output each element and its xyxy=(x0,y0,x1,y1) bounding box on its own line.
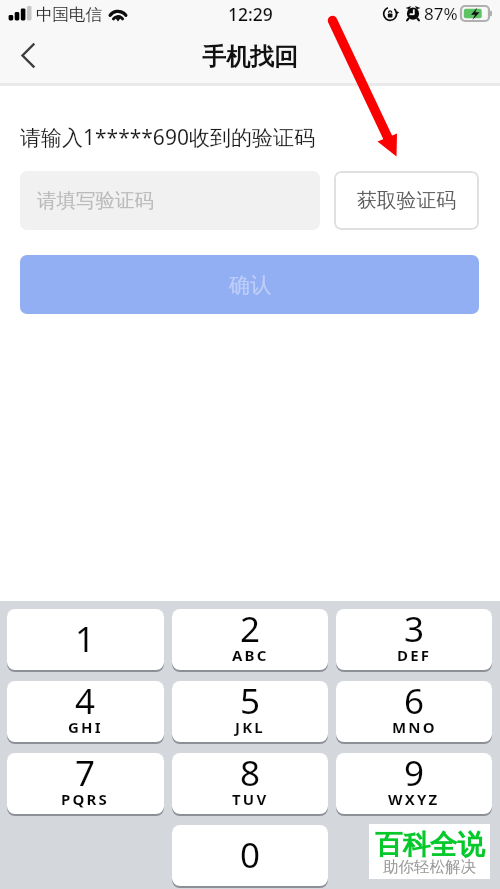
staticText: 确认 xyxy=(229,272,271,298)
staticText: 3 xyxy=(404,609,425,653)
staticText: DEF xyxy=(397,645,432,665)
button[interactable]: 9 xyxy=(336,753,492,814)
staticText: ABC xyxy=(232,645,269,665)
staticText: 请填写验证码 xyxy=(37,188,154,213)
staticText: WXYZ xyxy=(388,789,440,809)
staticText: MNO xyxy=(392,717,437,737)
button[interactable]: 请填写验证码 xyxy=(20,171,320,230)
staticText: 1 xyxy=(75,615,96,663)
button[interactable]: 4 xyxy=(7,681,164,742)
staticText: 手机找回 xyxy=(202,42,298,72)
button[interactable]: 0 xyxy=(172,825,328,886)
button[interactable]: 3 xyxy=(336,609,492,670)
staticText: 4 xyxy=(75,681,96,725)
button[interactable]: 7 xyxy=(7,753,164,814)
staticText: 百科全说 xyxy=(375,828,485,863)
staticText: 6 xyxy=(404,681,425,725)
staticText: GHI xyxy=(68,717,103,737)
button[interactable]: 1 xyxy=(7,609,164,670)
staticText: 请输入1*****690收到的验证码 xyxy=(20,123,315,152)
staticText: 87% xyxy=(424,2,458,25)
staticText: 8 xyxy=(240,753,261,797)
staticText: TUV xyxy=(232,789,269,809)
staticText: 7 xyxy=(75,753,96,797)
staticText: 0 xyxy=(240,831,261,879)
button[interactable]: Back xyxy=(0,31,56,82)
staticText: 12:29 xyxy=(228,2,273,26)
staticText: 中国电信 xyxy=(36,4,102,25)
staticText: 9 xyxy=(404,753,425,797)
staticText: 助你轻松解决 xyxy=(383,857,476,877)
button[interactable]: 8 xyxy=(172,753,328,814)
button[interactable]: 2 xyxy=(172,609,328,670)
staticText: 5 xyxy=(240,681,261,725)
button[interactable]: 6 xyxy=(336,681,492,742)
staticText: 2 xyxy=(240,609,261,653)
staticText: 获取验证码 xyxy=(357,188,456,213)
staticText: JKL xyxy=(235,717,265,737)
staticText: PQRS xyxy=(61,789,110,809)
button[interactable]: 5 xyxy=(172,681,328,742)
button[interactable]: 确认 xyxy=(20,255,479,314)
button[interactable]: 获取验证码 xyxy=(334,171,479,230)
